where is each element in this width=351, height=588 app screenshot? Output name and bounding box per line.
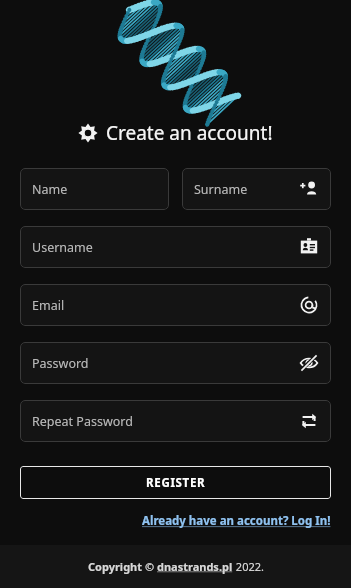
- staticText: Create an account!: [106, 120, 273, 146]
- button[interactable]: REGISTER: [20, 466, 331, 499]
- staticText: Already have an account? Log In!: [142, 513, 331, 529]
- staticText: Repeat Password: [32, 413, 133, 430]
- button[interactable]: Email: [20, 284, 331, 326]
- staticText: 2022.: [233, 559, 264, 574]
- staticText: Username: [32, 239, 93, 256]
- other: Show password: [299, 353, 319, 373]
- other: Repeat password: [299, 411, 319, 431]
- other: Add person: [299, 179, 319, 199]
- other: Email: [299, 295, 319, 315]
- staticText: Copyright ©: [88, 559, 157, 574]
- button[interactable]: Repeat Password: [20, 400, 331, 442]
- button[interactable]: Surname: [182, 168, 331, 210]
- staticText: Email: [32, 297, 65, 314]
- button[interactable]: Password: [20, 342, 331, 384]
- button[interactable]: Name: [20, 168, 169, 210]
- button[interactable]: Already have an account? Log In!: [142, 513, 331, 529]
- staticText: REGISTER: [146, 475, 206, 491]
- staticText: Surname: [194, 181, 248, 198]
- button[interactable]: Username: [20, 226, 331, 268]
- button[interactable]: dnastrands.pl: [157, 559, 233, 574]
- staticText: dnastrands.pl: [157, 559, 233, 574]
- other: Username badge: [299, 237, 319, 257]
- staticText: Name: [32, 181, 68, 198]
- staticText: Password: [32, 355, 89, 372]
